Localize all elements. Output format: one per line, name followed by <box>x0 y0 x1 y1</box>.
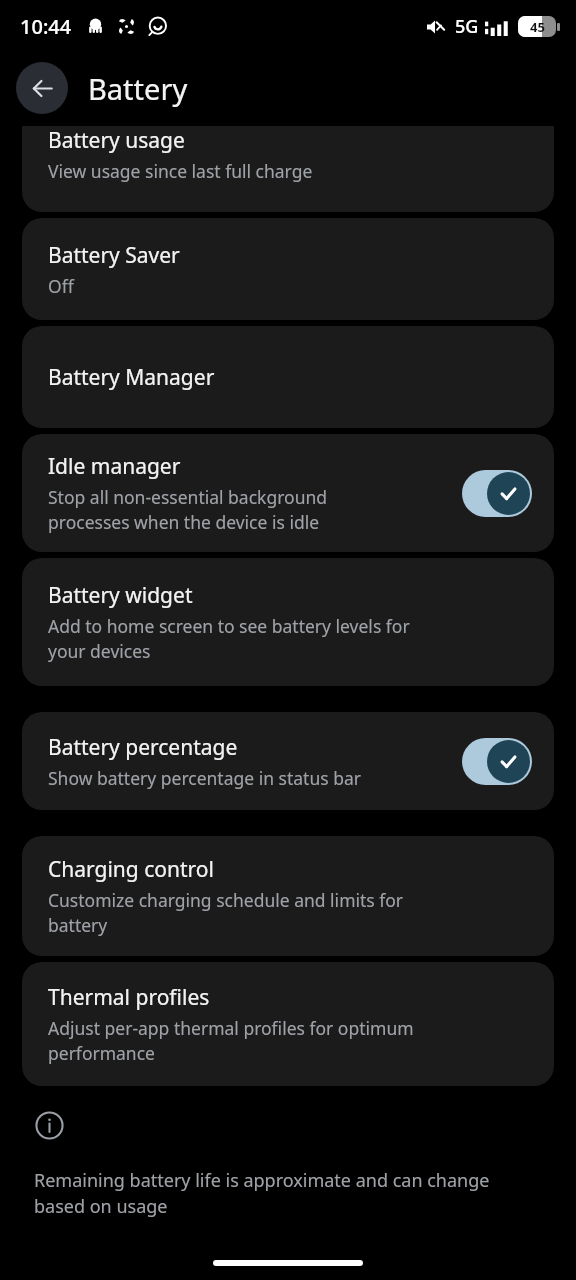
staticText: View usage since last full charge <box>48 159 313 183</box>
staticText: Battery Manager <box>48 363 215 392</box>
staticText: Stop all non-essential background proces… <box>48 485 328 534</box>
button[interactable]: Idle manager <box>22 434 554 552</box>
button[interactable]: Charging control <box>22 836 554 956</box>
button[interactable]: Toggle, on <box>462 469 532 517</box>
button[interactable]: Battery Manager <box>22 326 554 428</box>
staticText: Off <box>48 274 74 298</box>
staticText: 45 <box>530 18 545 36</box>
button[interactable]: Battery Saver <box>22 218 554 320</box>
button[interactable]: Battery widget <box>22 558 554 686</box>
button[interactable]: Thermal profiles <box>22 962 554 1086</box>
staticText: Battery <box>88 69 188 108</box>
staticText: Charging control <box>48 855 214 884</box>
staticText: Idle manager <box>48 452 181 481</box>
staticText: Battery widget <box>48 581 193 610</box>
button[interactable]: Battery percentage <box>22 712 554 810</box>
button[interactable]: Toggle, on <box>462 737 532 785</box>
staticText: Thermal profiles <box>48 983 210 1012</box>
staticText: Battery Saver <box>48 241 180 270</box>
button[interactable]: Battery usage <box>22 126 554 212</box>
button[interactable]: Back <box>16 62 68 114</box>
staticText: 5G <box>455 14 479 39</box>
staticText: Battery usage <box>48 126 185 155</box>
staticText: Remaining battery life is approximate an… <box>34 1168 490 1219</box>
staticText: Battery percentage <box>48 733 238 762</box>
staticText: Adjust per-app thermal profiles for opti… <box>48 1016 414 1065</box>
staticText: Customize charging schedule and limits f… <box>48 888 404 937</box>
staticText: 10:44 <box>20 13 72 40</box>
button[interactable]: Information <box>34 1110 64 1140</box>
staticText: Add to home screen to see battery levels… <box>48 614 410 663</box>
staticText: Show battery percentage in status bar <box>48 766 361 790</box>
